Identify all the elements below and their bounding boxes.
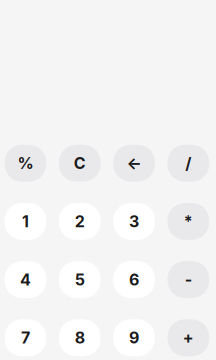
staticText: 2 (75, 212, 85, 231)
button[interactable]: 9 (113, 319, 155, 356)
button[interactable]: / (167, 145, 209, 182)
button[interactable]: + (167, 319, 209, 356)
button[interactable]: * (167, 203, 209, 240)
staticText: C (74, 153, 86, 173)
staticText: * (184, 212, 193, 231)
button[interactable]: 8 (59, 319, 101, 356)
button[interactable]: - (167, 261, 209, 298)
staticText: 7 (21, 328, 30, 347)
button[interactable]: 6 (113, 261, 155, 298)
button[interactable]: 7 (5, 319, 46, 356)
staticText: 9 (129, 328, 139, 347)
staticText: 6 (129, 270, 139, 289)
staticText: + (183, 328, 194, 347)
staticText: % (17, 153, 33, 173)
button[interactable]: C (59, 145, 101, 182)
button[interactable]: 4 (5, 261, 46, 298)
staticText: 5 (75, 270, 85, 289)
staticText: 1 (22, 212, 29, 231)
button[interactable]: % (5, 145, 46, 182)
button[interactable]: 5 (59, 261, 101, 298)
button[interactable]: 1 (5, 203, 46, 240)
button[interactable]: 3 (113, 203, 155, 240)
staticText: 8 (75, 328, 85, 347)
staticText: ← (127, 153, 142, 173)
staticText: - (185, 270, 192, 289)
button[interactable]: ← (113, 145, 155, 182)
button[interactable]: 2 (59, 203, 101, 240)
staticText: 4 (20, 270, 31, 289)
staticText: 3 (129, 212, 139, 231)
staticText: / (185, 153, 191, 173)
